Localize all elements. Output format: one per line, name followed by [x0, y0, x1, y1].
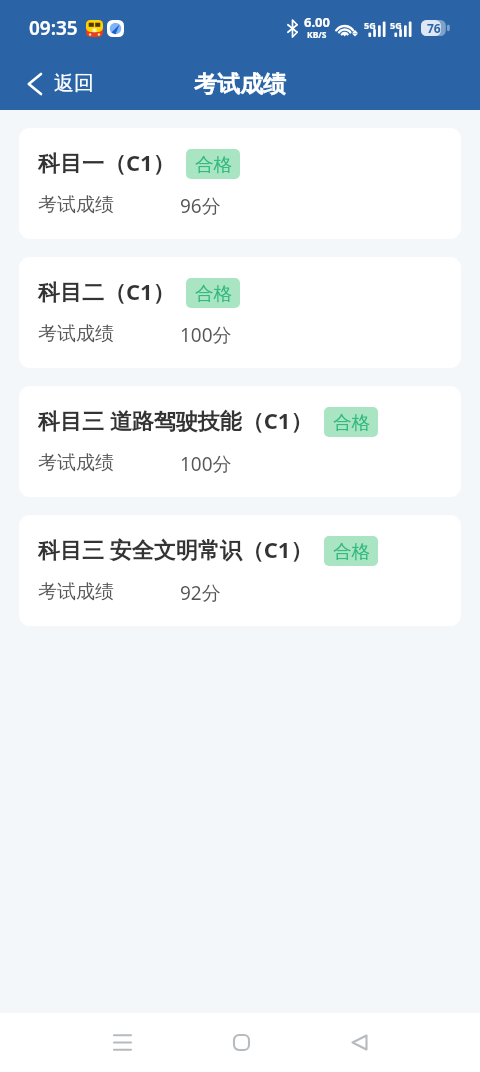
- staticText: 92分: [180, 580, 221, 606]
- staticText: 合格: [195, 282, 232, 305]
- button[interactable]: 返回: [0, 62, 108, 105]
- staticText: KB/S: [307, 29, 327, 41]
- button[interactable]: Back: [329, 1013, 389, 1072]
- staticText: 合格: [333, 540, 370, 563]
- staticText: 科目三 安全文明常识（C1）: [38, 534, 313, 564]
- staticText: 返回: [54, 71, 94, 96]
- button[interactable]: 科目三 道路驾驶技能（C1）: [19, 386, 461, 497]
- staticText: 09:35: [29, 15, 78, 41]
- staticText: 合格: [333, 411, 370, 434]
- staticText: 考试成绩: [38, 451, 114, 475]
- staticText: 合格: [195, 153, 232, 176]
- staticText: 考试成绩: [194, 70, 286, 99]
- staticText: 100分: [180, 451, 232, 477]
- staticText: 76: [427, 20, 441, 36]
- staticText: 96分: [180, 193, 221, 219]
- button[interactable]: Recent apps: [92, 1013, 152, 1072]
- staticText: 5G: [390, 19, 402, 31]
- button[interactable]: 科目一（C1）: [19, 128, 461, 239]
- staticText: 考试成绩: [38, 193, 114, 217]
- button[interactable]: 科目三 安全文明常识（C1）: [19, 515, 461, 626]
- button[interactable]: 科目二（C1）: [19, 257, 461, 368]
- staticText: 考试成绩: [38, 322, 114, 346]
- staticText: 科目三 道路驾驶技能（C1）: [38, 405, 313, 435]
- staticText: 科目二（C1）: [38, 276, 175, 306]
- staticText: 5G: [364, 19, 376, 31]
- staticText: 科目一（C1）: [38, 147, 175, 177]
- button[interactable]: Home: [211, 1013, 271, 1072]
- staticText: 考试成绩: [38, 580, 114, 604]
- staticText: 6.00: [304, 13, 330, 31]
- staticText: 100分: [180, 322, 232, 348]
